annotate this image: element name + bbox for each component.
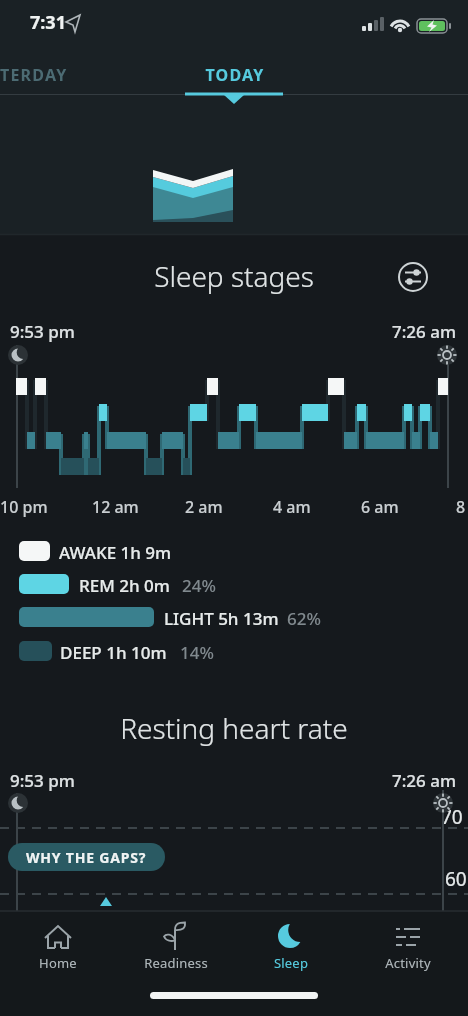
staticText: REM 2h 0m [79,574,170,597]
button[interactable] [19,641,52,661]
staticText: 9:53 pm [10,320,75,343]
button[interactable] [19,574,69,594]
staticText: TODAY [180,64,290,86]
staticText: 24% [182,574,216,597]
staticText: 60 [445,866,467,892]
staticText: 7:31 [30,10,66,35]
staticText: LIGHT 5h 13m [164,607,279,630]
staticText: 8 [456,496,466,518]
button[interactable]: WHY THE GAPS? [8,843,165,871]
staticText: 12 am [92,496,139,518]
staticText: WHY THE GAPS? [26,848,147,867]
staticText: 62% [287,607,321,630]
staticText: 10 pm [0,496,48,518]
button[interactable] [19,607,154,627]
staticText: Sleep [231,954,351,972]
staticText: 2 am [185,496,223,518]
button[interactable] [396,260,430,294]
staticText: 4 am [273,496,311,518]
button[interactable] [19,541,50,561]
staticText: Resting heart rate [0,709,468,747]
staticText: Home [0,954,118,972]
staticText: Sleep stages [0,257,468,295]
button[interactable] [360,915,456,977]
button[interactable] [128,915,224,977]
button[interactable] [243,915,339,977]
staticText: 9:53 pm [10,769,75,792]
staticText: AWAKE 1h 9m [59,541,172,564]
staticText: 14% [180,641,214,664]
staticText: 7:26 am [0,769,456,792]
button[interactable] [0,58,110,94]
staticText: Readiness [116,954,236,972]
staticText: Activity [348,954,468,972]
staticText: 6 am [361,496,399,518]
staticText: TERDAY [0,64,68,86]
staticText: 7:26 am [0,320,456,343]
staticText: DEEP 1h 10m [60,641,167,664]
staticText: 70 [441,804,463,830]
button[interactable] [180,58,290,98]
button[interactable] [10,915,106,977]
